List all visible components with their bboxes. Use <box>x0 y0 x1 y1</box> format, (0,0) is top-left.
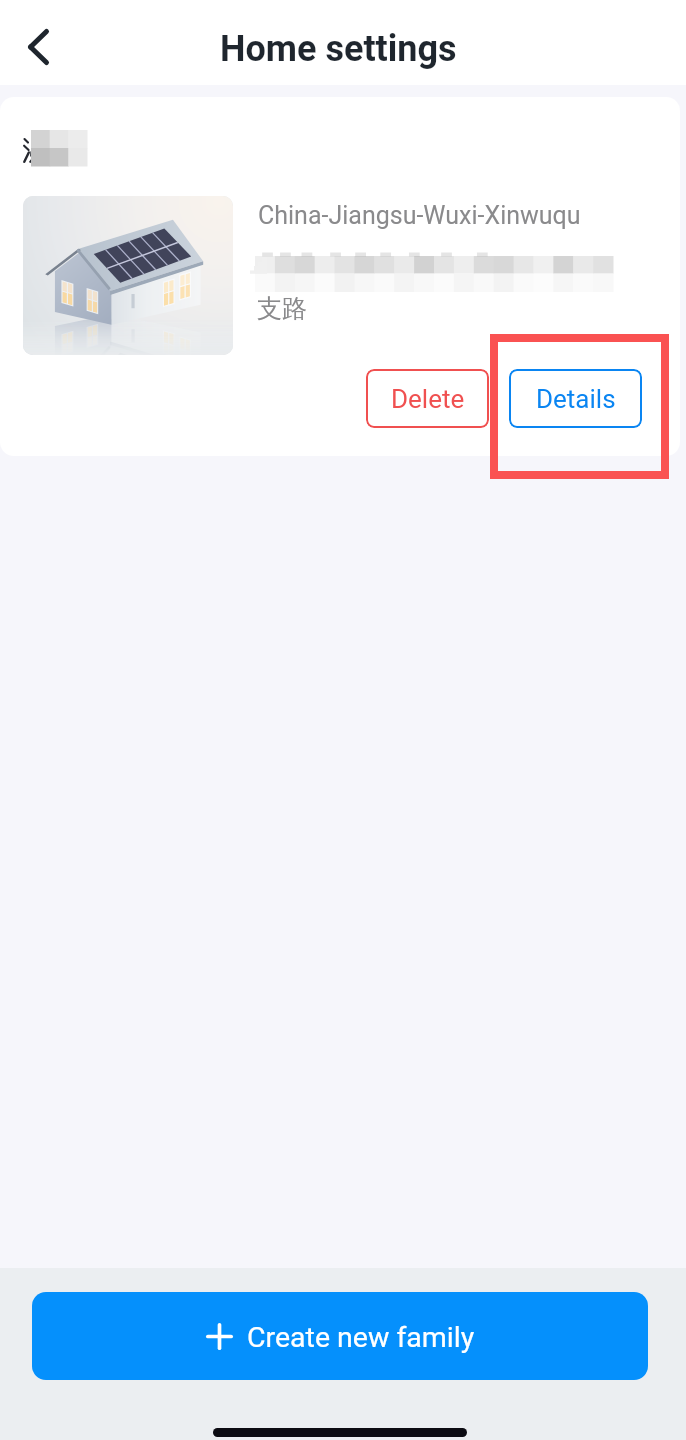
staticText: Create new family <box>247 1321 475 1354</box>
staticText: Details <box>536 384 616 414</box>
button[interactable]: Delete <box>366 369 489 428</box>
button[interactable]: Create new family <box>32 1292 648 1380</box>
staticText: Delete <box>391 384 465 414</box>
staticText: 支路 <box>257 293 307 324</box>
staticText: China-Jiangsu-Wuxi-Xinwuqu <box>258 201 581 230</box>
staticText: Home settings <box>220 28 457 70</box>
button[interactable]: Back <box>4 13 72 81</box>
button[interactable]: Details <box>509 369 642 428</box>
